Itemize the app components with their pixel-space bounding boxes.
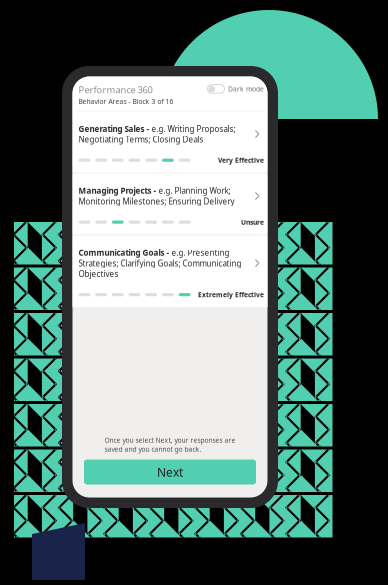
button[interactable]: Managing Projects - e.g. Planning Work; …: [72, 173, 267, 234]
staticText: Generating Sales - e.g. Writing Proposal…: [78, 123, 235, 145]
staticText: Unsure: [241, 218, 264, 227]
staticText: Once you select Next, your responses are…: [104, 436, 235, 453]
staticText: Dark mode: [228, 84, 264, 93]
staticText: Communicating Goals - e.g. Presenting St…: [78, 247, 241, 279]
staticText: Performance 360: [78, 83, 152, 96]
staticText: Managing Projects - e.g. Planning Work; …: [78, 185, 234, 207]
staticText: Behavior Areas - Block 3 of 16: [78, 97, 173, 106]
button[interactable]: Generating Sales - e.g. Writing Proposal…: [72, 111, 267, 173]
button[interactable]: Next: [84, 459, 256, 484]
staticText: Extremely Effective: [198, 290, 264, 299]
button[interactable]: Dark mode: [207, 84, 264, 93]
button[interactable]: Communicating Goals - e.g. Presenting St…: [72, 235, 267, 307]
staticText: Next: [157, 464, 183, 480]
staticText: Very Effective: [218, 156, 264, 165]
